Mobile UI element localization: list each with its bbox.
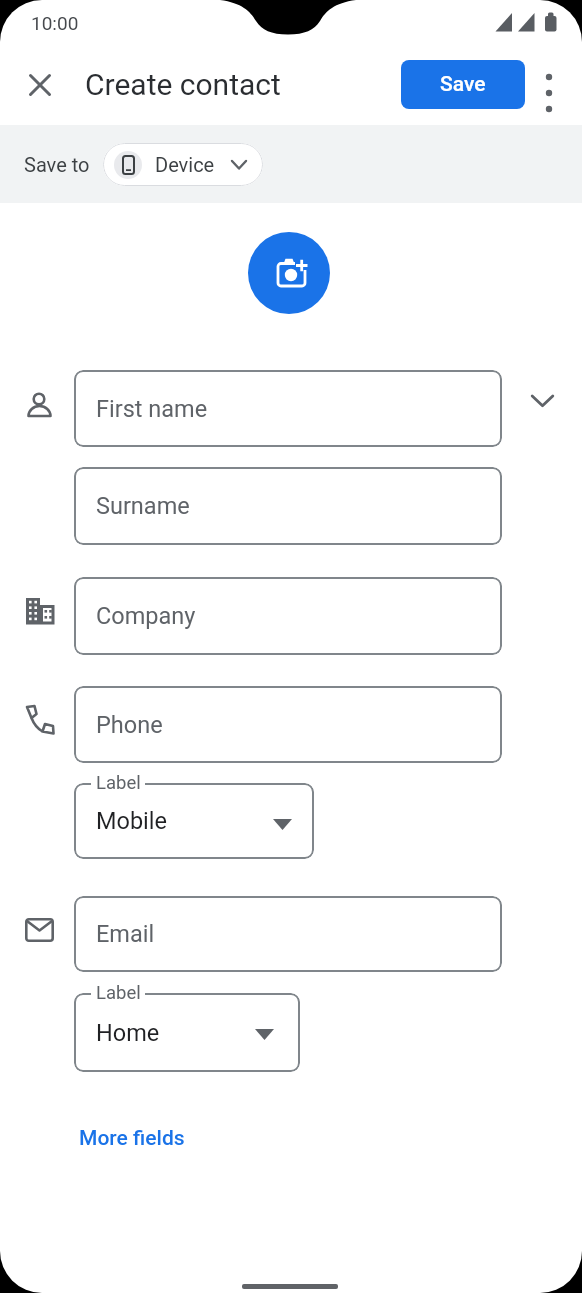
button[interactable]: More fields: [62, 1114, 202, 1162]
staticText: Surname: [96, 492, 190, 520]
staticText: Device: [155, 153, 215, 176]
button[interactable]: First name: [74, 370, 502, 447]
button[interactable]: Surname: [74, 467, 502, 545]
button[interactable]: [248, 232, 330, 314]
staticText: Create contact: [85, 67, 281, 102]
button[interactable]: [518, 377, 566, 425]
button[interactable]: Company: [74, 577, 502, 655]
staticText: First name: [96, 395, 208, 423]
button[interactable]: Device: [103, 143, 263, 186]
staticText: Save: [440, 72, 486, 97]
staticText: 10:00: [31, 12, 79, 34]
button[interactable]: Mobile: [74, 783, 314, 859]
staticText: Label: [96, 982, 141, 1004]
button[interactable]: [16, 61, 64, 109]
staticText: More fields: [79, 1126, 185, 1151]
button[interactable]: Phone: [74, 686, 502, 763]
button[interactable]: Email: [74, 896, 502, 972]
staticText: Company: [96, 602, 196, 630]
staticText: Home: [96, 1019, 160, 1047]
staticText: Mobile: [96, 807, 168, 835]
button[interactable]: Home: [74, 993, 300, 1072]
staticText: Email: [96, 920, 155, 948]
button[interactable]: [527, 71, 571, 115]
staticText: Label: [96, 772, 141, 794]
button[interactable]: Save: [401, 60, 525, 109]
staticText: Save to: [24, 153, 90, 176]
staticText: Phone: [96, 711, 163, 739]
